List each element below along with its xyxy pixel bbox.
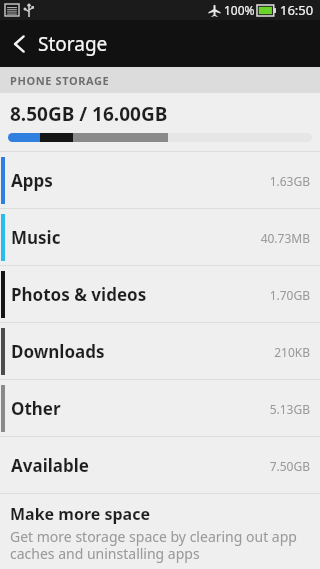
staticText: 1.70GB — [269, 287, 310, 303]
staticText: Get more storage space by clearing out a… — [10, 527, 308, 563]
staticText: Apps — [11, 169, 53, 192]
button[interactable]: Music — [0, 209, 320, 266]
staticText: Other — [11, 397, 61, 420]
button[interactable]: Make more space — [0, 494, 320, 568]
staticText: 5.13GB — [269, 401, 310, 417]
staticText: Downloads — [11, 340, 105, 363]
staticText: 210KB — [274, 344, 310, 360]
button[interactable]: Other — [0, 380, 320, 437]
staticText: Available — [11, 454, 89, 477]
staticText: Photos & videos — [11, 283, 147, 306]
staticText: 8.50GB / 16.00GB — [10, 101, 168, 127]
staticText: 1.63GB — [269, 173, 310, 189]
button[interactable]: Back — [0, 20, 38, 67]
button[interactable]: Downloads — [0, 323, 320, 380]
staticText: Music — [11, 226, 61, 249]
button[interactable]: Photos & videos — [0, 266, 320, 323]
button[interactable]: Apps — [0, 152, 320, 209]
staticText: 100% — [224, 2, 255, 18]
staticText: 16:50 — [280, 1, 314, 19]
staticText: Storage — [38, 31, 108, 57]
staticText: Make more space — [10, 503, 150, 525]
staticText: 40.73MB — [260, 230, 310, 246]
staticText: 7.50GB — [269, 458, 310, 474]
button[interactable]: Available — [0, 437, 320, 494]
staticText: PHONE STORAGE — [10, 73, 110, 88]
